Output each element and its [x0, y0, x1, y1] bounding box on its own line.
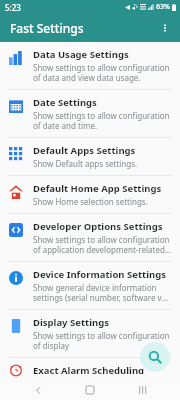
staticText: Exact Alarm Scheduling Settings — [33, 364, 172, 374]
staticText: Show Default apps settings. — [33, 158, 138, 169]
staticText: Show Home selection settings. — [33, 196, 148, 207]
staticText: Show settings to allow configuration of … — [33, 234, 172, 255]
staticText: Default Home App Settings — [33, 182, 162, 195]
button[interactable]: Date Settings — [0, 90, 180, 137]
staticText: Device Information Settings — [33, 268, 166, 281]
staticText: Date Settings — [33, 96, 97, 109]
button[interactable]: Back — [23, 380, 53, 400]
staticText: Display Settings — [33, 316, 109, 329]
button[interactable]: Search — [140, 342, 170, 372]
staticText: Show settings to allow configuration of … — [33, 110, 172, 131]
staticText: Fast Settings — [10, 20, 84, 36]
button[interactable]: Data Usage Settings — [0, 42, 180, 89]
button[interactable]: Developer Options Settings — [0, 214, 180, 261]
button[interactable]: Display Settings — [0, 310, 180, 357]
button[interactable]: Default Apps Settings — [0, 138, 180, 175]
staticText: Show settings to allow configuration of … — [33, 330, 172, 351]
staticText: 63% — [156, 2, 170, 12]
staticText: Developer Options Settings — [33, 220, 163, 233]
button[interactable]: More options — [153, 16, 177, 40]
button[interactable]: Default Home App Settings — [0, 176, 180, 213]
staticText: Data Usage Settings — [33, 48, 129, 61]
staticText: 5:23 — [5, 2, 21, 13]
button[interactable]: Recents — [128, 380, 158, 400]
staticText: Default Apps Settings — [33, 144, 136, 157]
button[interactable]: Home — [75, 380, 105, 400]
staticText: Show settings to allow configuration of … — [33, 62, 172, 83]
button[interactable]: Exact Alarm Scheduling Settings — [0, 358, 180, 380]
button[interactable]: Device Information Settings — [0, 262, 180, 309]
staticText: Show general device information settings… — [33, 282, 172, 303]
